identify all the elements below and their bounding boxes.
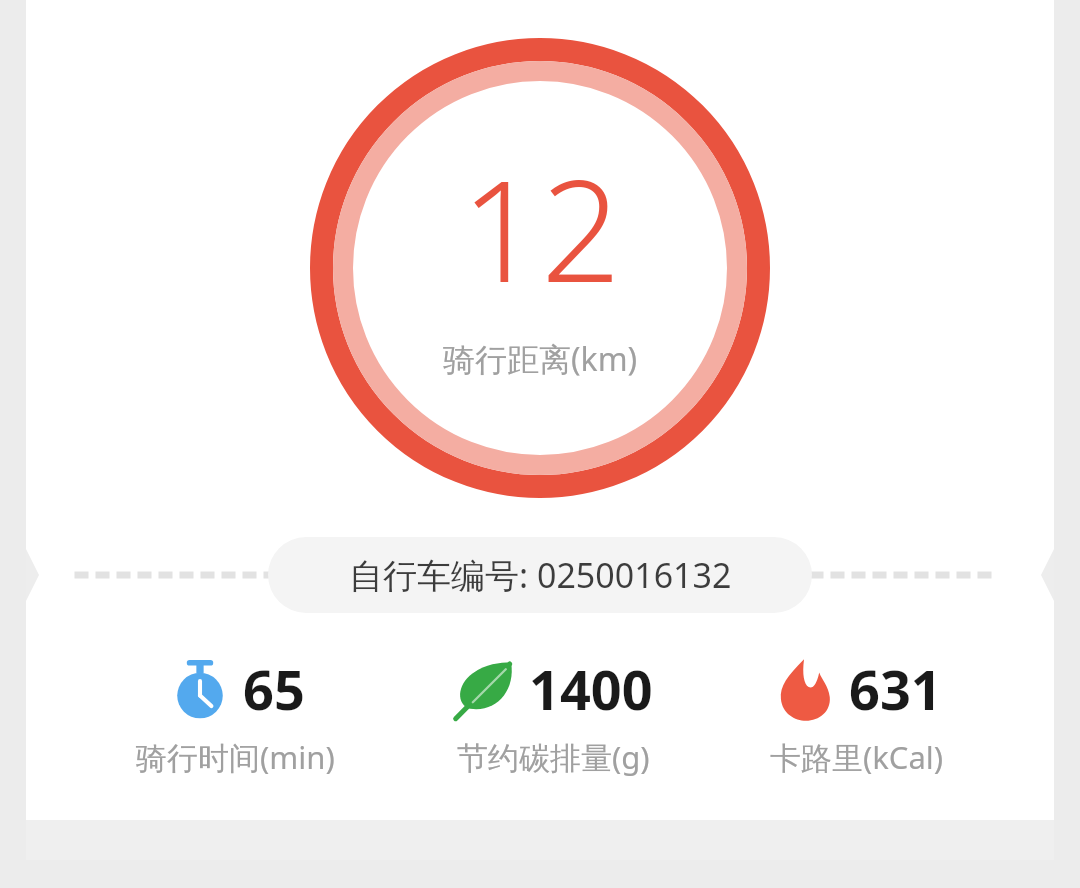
staticText: 卡路里(kCal): [770, 736, 944, 778]
staticText: 631: [849, 652, 942, 726]
staticText: 1400: [529, 652, 653, 726]
staticText: 12: [461, 132, 621, 323]
staticText: 65: [243, 652, 305, 726]
button[interactable]: Calories: [762, 652, 952, 778]
staticText: 自行车编号: 0250016132: [349, 552, 732, 598]
other: Ride time: [167, 656, 233, 722]
staticText: 骑行距离(km): [443, 337, 638, 381]
other: Calories: [773, 656, 839, 722]
button[interactable]: Ride time: [128, 652, 343, 778]
button[interactable]: 自行车编号: 0250016132: [268, 537, 812, 613]
other: Carbon saved: [453, 656, 519, 722]
staticText: 节约碳排量(g): [457, 736, 650, 778]
button[interactable]: Carbon saved: [445, 652, 661, 778]
staticText: 骑行时间(min): [136, 736, 335, 778]
